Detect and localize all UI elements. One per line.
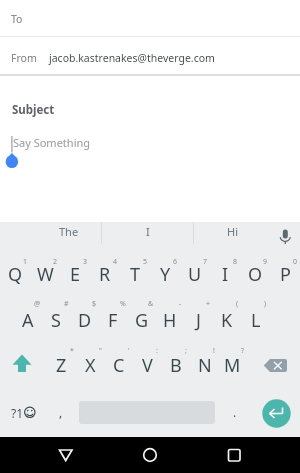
button[interactable]: W [30,250,60,298]
button[interactable]: Y [150,250,180,298]
staticText: E [70,262,81,287]
button[interactable]: O [240,250,270,298]
button[interactable]: Subject [0,90,300,126]
staticText: Z [56,353,67,378]
staticText: $ [92,299,97,309]
staticText: N [198,353,212,378]
staticText: 9 [263,257,268,267]
button[interactable]: V [133,341,162,389]
staticText: + [206,299,211,309]
button[interactable]: K [212,296,241,344]
staticText: U [188,262,202,287]
staticText: 5 [143,257,148,267]
staticText: 4 [113,257,118,267]
staticText: @ [34,299,41,309]
staticText: A [22,308,34,333]
button[interactable]: G [127,296,156,344]
staticText: Subject [12,102,55,118]
button[interactable]: H [155,296,184,344]
staticText: X [85,353,96,378]
button[interactable]: Q [0,250,30,298]
staticText: # [64,299,69,309]
button[interactable]: I [118,217,178,245]
staticText: To [11,12,23,26]
button[interactable]: U [180,250,210,298]
staticText: . [233,404,237,420]
staticText: - [179,299,182,309]
staticText: F [108,308,118,333]
staticText: S [51,308,61,333]
staticText: & [148,299,154,309]
staticText: L [251,308,261,333]
button[interactable]: ?1 [3,390,31,436]
staticText: D [78,308,92,333]
staticText: * [70,346,74,356]
staticText: ! [213,346,215,356]
staticText: P [280,262,291,287]
staticText: ?1 [11,405,24,421]
staticText: 3 [83,257,88,267]
staticText: K [221,308,233,333]
button[interactable]: P [270,250,300,298]
button[interactable] [258,341,296,389]
button[interactable]: To [0,0,300,36]
button[interactable]: X [76,341,105,389]
staticText: G [135,308,149,333]
staticText: ) [264,299,267,309]
staticText: V [142,353,153,378]
button[interactable] [129,440,171,470]
staticText: J [196,308,201,333]
staticText: 7 [203,257,208,267]
button[interactable]: D [70,296,99,344]
staticText: 8 [233,257,238,267]
button[interactable]: I [210,250,240,298]
button[interactable]: S [41,296,70,344]
staticText: , [59,404,63,420]
staticText: Y [160,262,171,287]
button[interactable]: C [104,341,133,389]
staticText: ( [236,299,239,309]
staticText: From [11,51,37,65]
button[interactable]: M [218,341,247,389]
button[interactable]: From [0,37,300,75]
staticText: C [113,353,125,378]
button[interactable] [45,440,87,470]
button[interactable]: . [223,392,247,432]
button[interactable]: , [49,392,73,432]
staticText: : [156,346,158,356]
staticText: 1 [23,257,28,267]
button[interactable]: Say Something [0,126,300,214]
staticText: O [248,262,263,287]
staticText: % [120,299,126,309]
button[interactable]: J [184,296,213,344]
button[interactable]: R [90,250,120,298]
staticText: M [224,353,241,378]
button[interactable]: The [39,217,99,245]
staticText: 6 [173,257,178,267]
staticText: The [59,224,79,239]
staticText: Say Something [13,135,91,150]
button[interactable]: B [161,341,190,389]
staticText: jacob.kastrenakes@theverge.com [49,51,215,65]
staticText: 2 [53,257,58,267]
button[interactable]: N [190,341,219,389]
button[interactable]: Hi [202,217,262,245]
staticText: W [37,262,54,287]
button[interactable]: A [13,296,42,344]
button[interactable]: L [241,296,270,344]
staticText: Q [8,262,23,287]
staticText: " [99,346,102,356]
button[interactable]: E [60,250,90,298]
staticText: ; [185,346,187,356]
staticText: ? [241,346,245,356]
button[interactable] [213,440,255,470]
staticText: R [99,262,111,287]
button[interactable]: Z [47,341,76,389]
button[interactable] [4,341,40,389]
staticText: ' [128,346,130,356]
button[interactable]: T [120,250,150,298]
button[interactable] [262,399,291,428]
staticText: B [170,353,182,378]
button[interactable]: F [98,296,127,344]
